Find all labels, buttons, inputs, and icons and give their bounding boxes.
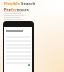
staticText: Lorem ipsum dolor sit amet consectetur a… (4, 10, 30, 23)
staticText: Flexible Search Preferences (4, 1, 40, 12)
